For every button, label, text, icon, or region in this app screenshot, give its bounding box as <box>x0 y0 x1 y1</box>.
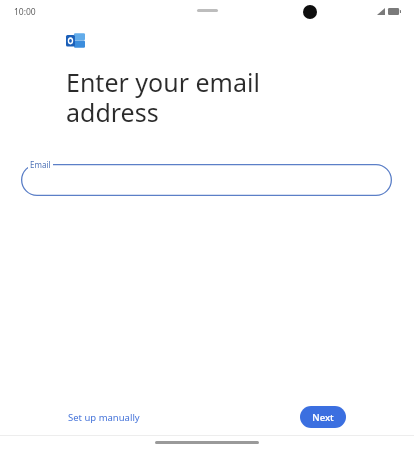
staticText: Next <box>312 411 334 424</box>
staticText: 10:00 <box>14 6 36 18</box>
button[interactable]: Next <box>300 406 346 428</box>
other: Home gesture bar <box>155 441 259 444</box>
staticText: Set up manually <box>68 411 140 424</box>
staticText: Email <box>30 159 51 170</box>
button[interactable] <box>21 164 392 196</box>
staticText: Enter your email address <box>66 65 260 130</box>
button[interactable]: Set up manually <box>60 406 148 429</box>
